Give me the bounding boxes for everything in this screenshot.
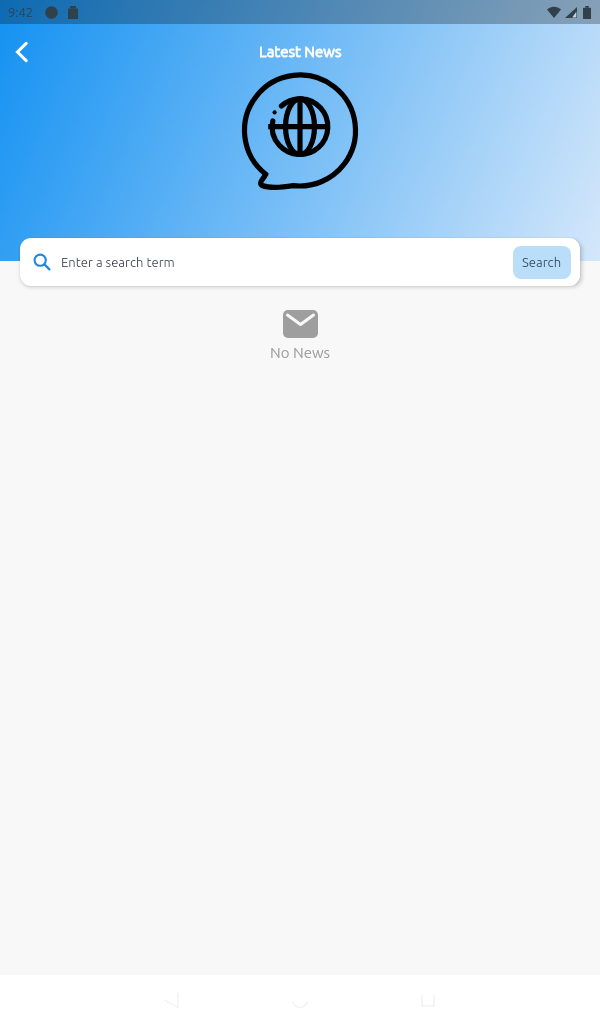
button[interactable]: Search <box>513 246 571 279</box>
other: Search icon <box>33 253 51 271</box>
staticText: Enter a search term <box>61 255 175 270</box>
staticText: No News <box>270 344 331 361</box>
staticText: 9:42 <box>8 5 34 20</box>
staticText: Search <box>522 255 562 270</box>
button[interactable]: Back <box>0 30 44 74</box>
staticText: Latest News <box>259 43 342 60</box>
